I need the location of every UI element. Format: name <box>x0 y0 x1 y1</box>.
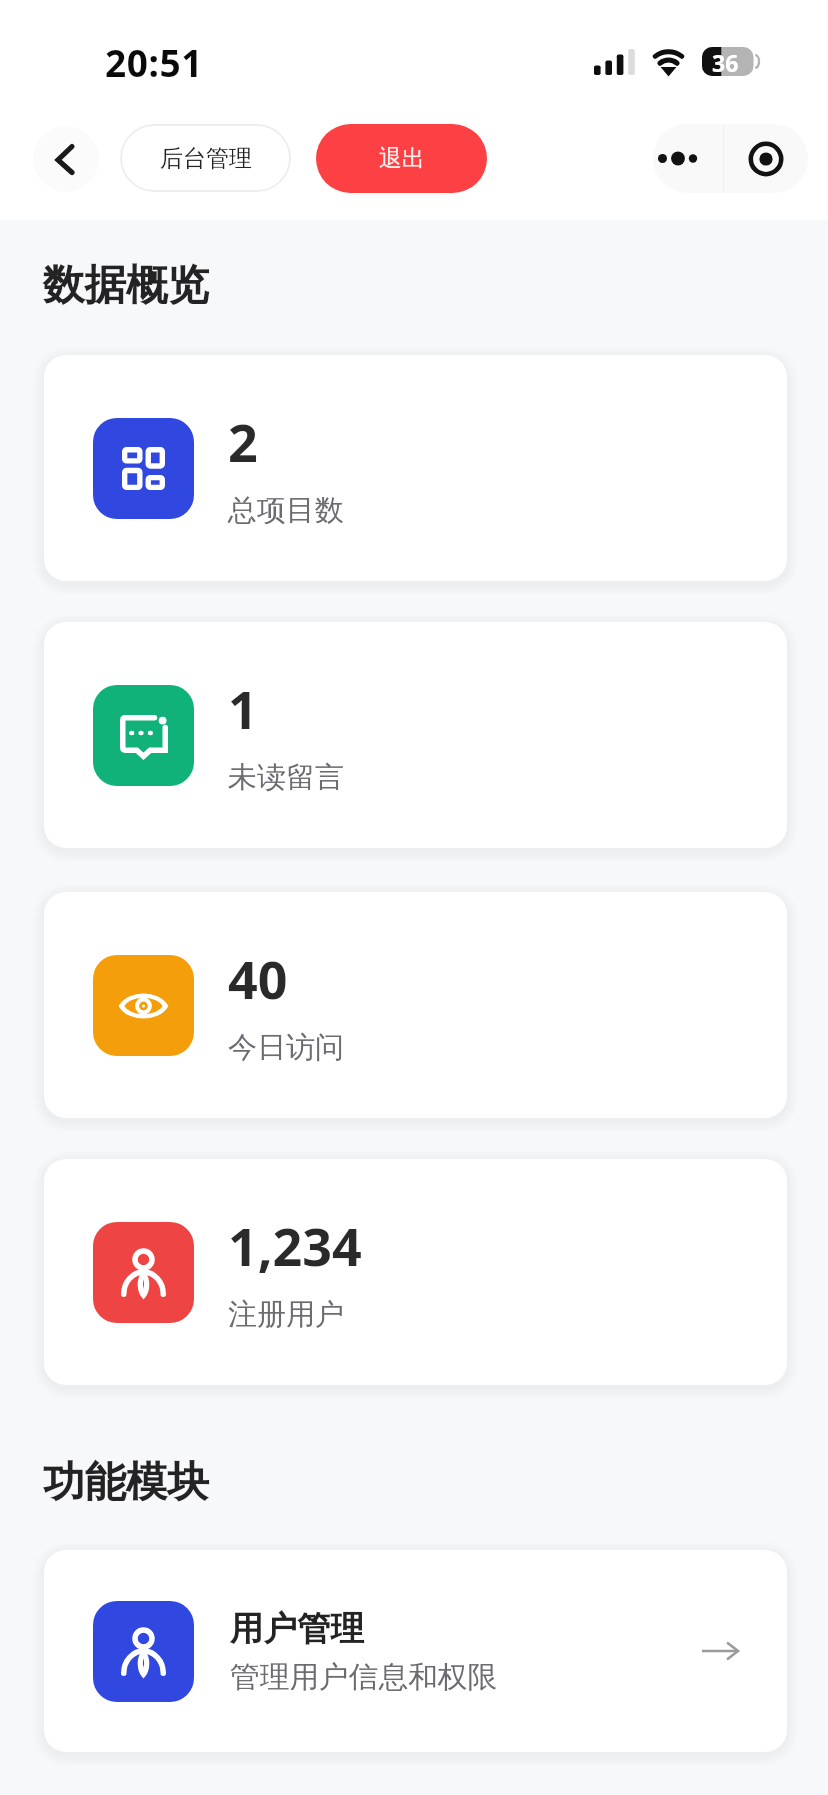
staticText: 退出 <box>379 144 425 173</box>
staticText: 20:51 <box>105 37 204 87</box>
button[interactable]: 退出 <box>316 124 487 193</box>
staticText: 注册用户 <box>228 1296 344 1333</box>
staticText: 40 <box>228 943 288 1014</box>
staticText: 后台管理 <box>160 144 252 173</box>
staticText: 用户管理 <box>230 1608 364 1650</box>
button[interactable]: 2 <box>44 355 787 581</box>
button[interactable]: More options <box>653 124 723 193</box>
button[interactable]: Back <box>33 126 99 192</box>
staticText: 数据概览 <box>43 259 209 311</box>
staticText: 1 <box>228 673 258 744</box>
button[interactable]: 40 <box>44 892 787 1118</box>
button[interactable]: 1 <box>44 622 787 848</box>
staticText: 未读留言 <box>228 759 344 796</box>
staticText: 1,234 <box>228 1210 362 1281</box>
staticText: 管理用户信息和权限 <box>230 1658 498 1695</box>
button[interactable]: 后台管理 <box>120 124 291 192</box>
button[interactable]: 用户管理 <box>44 1550 787 1752</box>
staticText: 2 <box>228 406 258 477</box>
staticText: 总项目数 <box>228 492 344 529</box>
button[interactable]: Close mini program <box>724 124 808 193</box>
staticText: 今日访问 <box>228 1029 344 1066</box>
staticText: 36 <box>712 47 739 78</box>
button[interactable]: 1,234 <box>44 1159 787 1385</box>
staticText: 功能模块 <box>43 1456 209 1508</box>
